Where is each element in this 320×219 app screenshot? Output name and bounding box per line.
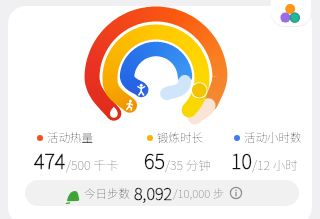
staticText: 8,092 xyxy=(134,181,173,205)
button[interactable] xyxy=(271,0,311,27)
staticText: 今日步数 xyxy=(84,185,130,202)
button[interactable]: 锻炼时长 xyxy=(144,129,211,175)
staticText: 锻炼时长 xyxy=(157,129,203,146)
staticText: /10,000 步 xyxy=(173,185,225,202)
button[interactable]: 今日步数 xyxy=(25,180,299,206)
button[interactable] xyxy=(80,6,232,128)
staticText: 活动小时数 xyxy=(244,129,302,146)
button[interactable]: 活动小时数 xyxy=(231,129,302,175)
staticText: 474 xyxy=(34,146,66,175)
button[interactable]: 活动热量 xyxy=(34,129,119,175)
staticText: 10 xyxy=(231,146,252,175)
staticText: /12 小时 xyxy=(252,155,298,173)
staticText: 65 xyxy=(144,146,165,175)
staticText: 活动热量 xyxy=(47,129,93,146)
staticText: /35 分钟 xyxy=(165,155,211,173)
staticText: /500 千卡 xyxy=(66,155,119,173)
